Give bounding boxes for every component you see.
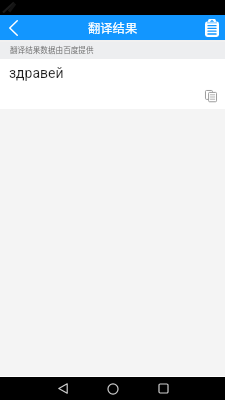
button[interactable]: Back (0, 15, 26, 40)
button[interactable]: Home (99, 377, 126, 400)
button[interactable]: Copy (202, 87, 220, 105)
button[interactable]: Back (49, 377, 76, 400)
button[interactable]: Recents (150, 377, 177, 400)
staticText: 翻译结果数据由百度提供 (10, 44, 94, 55)
staticText: здравей (9, 65, 64, 81)
button[interactable]: History (199, 15, 225, 40)
staticText: 翻译结果 (88, 19, 138, 37)
